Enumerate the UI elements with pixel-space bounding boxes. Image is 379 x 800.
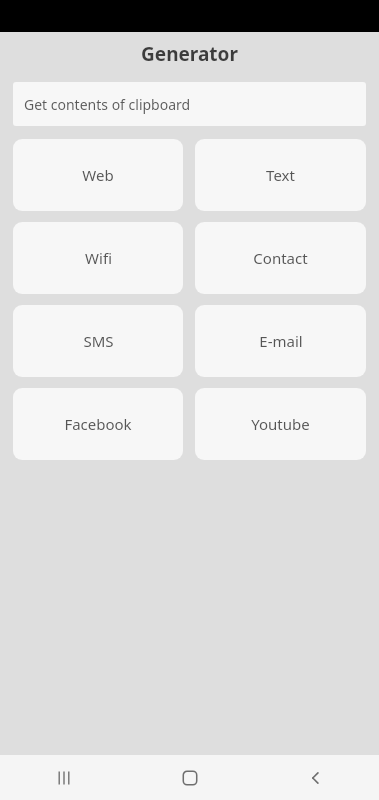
staticText: SMS [83, 331, 114, 351]
button[interactable]: Text [195, 139, 366, 211]
button[interactable]: Wifi [13, 222, 183, 294]
staticText: Web [82, 165, 114, 185]
staticText: Youtube [251, 414, 310, 434]
staticText: Text [266, 165, 295, 185]
button[interactable]: Home [127, 755, 253, 800]
staticText: Wifi [85, 248, 112, 268]
button[interactable]: Contact [195, 222, 366, 294]
staticText: Get contents of clipboard [24, 95, 191, 114]
button[interactable]: Back [253, 755, 379, 800]
button[interactable]: Web [13, 139, 183, 211]
staticText: Generator [141, 41, 238, 67]
staticText: Contact [253, 248, 308, 268]
button[interactable]: SMS [13, 305, 183, 377]
button[interactable]: Youtube [195, 388, 366, 460]
button[interactable]: Recent apps [0, 755, 127, 800]
button[interactable]: Get contents of clipboard [13, 82, 366, 126]
button[interactable]: E-mail [195, 305, 366, 377]
staticText: E-mail [259, 331, 303, 351]
button[interactable]: Facebook [13, 388, 183, 460]
staticText: Facebook [64, 414, 132, 434]
